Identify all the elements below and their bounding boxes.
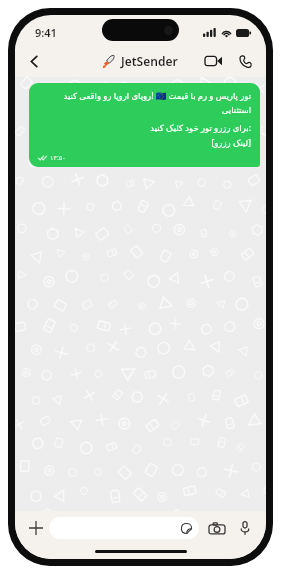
staticText: [لینک رزرو] [38,137,251,149]
staticText: رویای اروپا رو واقعی کنید! 🇪🇺 تور پاریس … [38,90,251,115]
staticText: ۱۴:۵۰ [50,153,66,162]
staticText: JetSender [121,53,178,69]
button[interactable]: JetSender [103,53,178,69]
button[interactable]: Video call [200,48,226,74]
button[interactable]: Voice message [232,515,258,541]
button[interactable]: Back [21,48,47,74]
button[interactable]: Attach [23,515,49,541]
staticText: برای رزرو تور خود کلیک کنید: [38,122,251,134]
button[interactable]: Stickers [180,522,193,535]
button[interactable]: رویای اروپا رو واقعی کنید! 🇪🇺 تور پاریس … [29,83,260,167]
button[interactable]: Voice call [232,48,258,74]
staticText: 9:41 [35,25,57,40]
button[interactable]: Stickers [49,517,199,539]
button[interactable]: Camera [204,515,230,541]
